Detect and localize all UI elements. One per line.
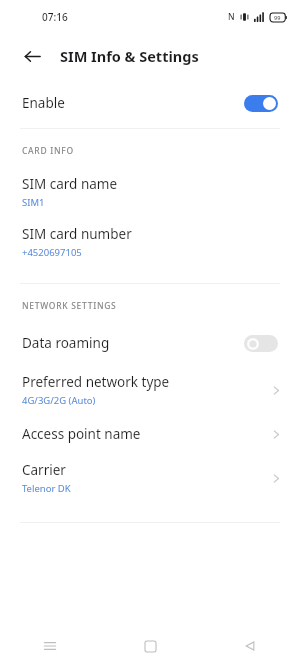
staticText: Preferred network type	[22, 373, 170, 391]
staticText: NETWORK SETTINGS	[22, 300, 117, 312]
button[interactable]: Recent apps	[0, 625, 100, 667]
staticText: 4G/3G/2G (Auto)	[22, 394, 96, 407]
staticText: SIM card number	[22, 225, 132, 243]
button[interactable]: Preferred network type	[0, 364, 300, 416]
staticText: CARD INFO	[22, 145, 74, 157]
button[interactable]: Access point name	[0, 416, 300, 452]
staticText: 07:16	[42, 10, 68, 24]
staticText: Carrier	[22, 461, 66, 479]
button[interactable]: Back	[16, 40, 48, 72]
button[interactable]: Data roaming	[0, 322, 300, 364]
button[interactable]: SIM card number	[0, 217, 300, 267]
staticText: Data roaming	[22, 334, 110, 352]
button[interactable]: Enable	[0, 78, 300, 128]
staticText: SIM1	[22, 196, 45, 209]
button[interactable]: SIM card name	[0, 167, 300, 217]
staticText: 99	[274, 14, 281, 21]
button[interactable]: Back	[200, 625, 300, 667]
staticText: Telenor DK	[22, 482, 71, 495]
staticText: +4520697105	[22, 246, 82, 259]
staticText: N	[228, 11, 235, 23]
staticText: SIM card name	[22, 175, 118, 193]
staticText: Access point name	[22, 425, 141, 443]
staticText: Enable	[22, 94, 65, 112]
button[interactable]: Home	[100, 625, 200, 667]
staticText: SIM Info & Settings	[60, 46, 199, 66]
button[interactable]: Carrier	[0, 452, 300, 504]
